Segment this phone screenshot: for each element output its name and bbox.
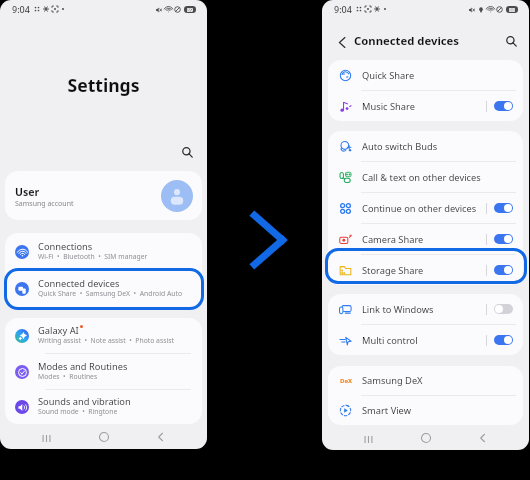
button[interactable]: Connected devices [5, 270, 202, 307]
staticText: Music Share [362, 100, 415, 113]
staticText: Quick Share [362, 69, 415, 82]
staticText: 9:04 [12, 3, 30, 15]
staticText: Settings [0, 73, 207, 97]
button[interactable]: Modes and Routines [5, 354, 202, 389]
button[interactable]: DeX [328, 366, 523, 395]
button[interactable]: Continue on other devices [328, 193, 523, 223]
button[interactable]: User [5, 171, 202, 220]
button[interactable]: Sounds and vibration [5, 390, 202, 424]
button[interactable]: Search [178, 143, 197, 162]
button[interactable]: Search [502, 32, 520, 50]
staticText: Smart View [362, 404, 411, 417]
button[interactable]: Multi control [494, 335, 513, 345]
button[interactable]: Recents [360, 430, 376, 446]
button[interactable]: Galaxy AI [5, 318, 202, 353]
staticText: Connected devices [354, 33, 460, 48]
button[interactable]: Back [475, 430, 491, 446]
button[interactable]: Quick Share [328, 60, 523, 90]
staticText: Call & text on other devices [362, 171, 481, 184]
button[interactable]: Multi control [328, 325, 523, 355]
button[interactable]: Call & text on other devices [328, 162, 523, 192]
staticText: 88 [509, 6, 515, 13]
staticText: User [15, 185, 40, 199]
staticText: Storage Share [362, 264, 424, 277]
button[interactable]: Storage Share [494, 265, 513, 275]
button[interactable]: Back [332, 32, 350, 50]
button[interactable]: Connections [5, 233, 202, 270]
staticText: Connected devices [38, 277, 120, 290]
staticText: Sound mode • Ringtone [38, 407, 118, 416]
button[interactable]: Back [153, 429, 169, 445]
staticText: Modes and Routines [38, 360, 128, 373]
button[interactable]: Music Share [494, 101, 513, 111]
staticText: Link to Windows [362, 303, 434, 316]
staticText: 9:04 [334, 3, 352, 15]
button[interactable]: Link to Windows [494, 304, 513, 314]
button[interactable]: Auto switch Buds [328, 131, 523, 161]
staticText: Writing assist • Note assist • Photo ass… [38, 336, 174, 345]
staticText: Modes • Routines [38, 372, 98, 381]
button[interactable]: Camera Share [328, 224, 523, 254]
staticText: Quick Share • Samsung DeX • Android Auto [38, 289, 183, 298]
button[interactable]: Recents [38, 429, 54, 445]
button[interactable]: Camera Share [494, 234, 513, 244]
button[interactable]: Continue on other devices [494, 203, 513, 213]
staticText: Multi control [362, 334, 418, 347]
staticText: Sounds and vibration [38, 395, 131, 408]
button[interactable]: Link to Windows [328, 294, 523, 324]
button[interactable]: Home [96, 429, 112, 445]
button[interactable]: Smart View [328, 396, 523, 425]
staticText: Samsung account [15, 199, 74, 209]
staticText: Connections [38, 240, 93, 253]
staticText: Galaxy AI [38, 324, 79, 337]
staticText: Wi-Fi • Bluetooth • SIM manager [38, 252, 148, 261]
staticText: Camera Share [362, 233, 424, 246]
button[interactable]: Music Share [328, 91, 523, 121]
staticText: Samsung DeX [362, 374, 423, 387]
staticText: Continue on other devices [362, 202, 477, 215]
button[interactable]: Storage Share [328, 255, 523, 285]
staticText: DeX [340, 377, 352, 385]
staticText: 89 [187, 6, 193, 13]
staticText: Auto switch Buds [362, 140, 438, 153]
button[interactable]: Home [418, 430, 434, 446]
